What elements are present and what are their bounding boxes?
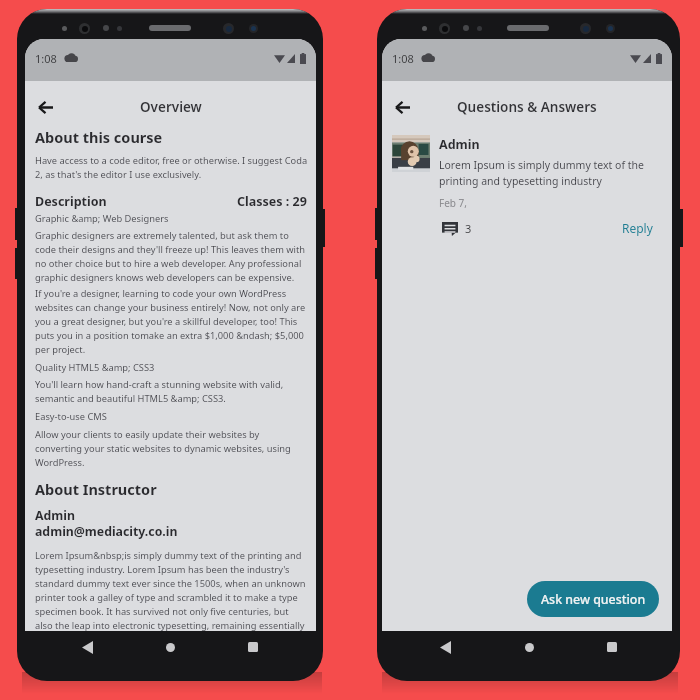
staticText: Description [35,193,107,210]
staticText: 1:08 [392,51,414,66]
staticText: Graphic designers are extremely talented… [35,229,306,284]
staticText: You'll learn how hand-craft a stunning w… [35,378,284,405]
staticText: Easy-to-use CMS [35,410,107,423]
staticText: Feb 7, [439,196,467,210]
button[interactable]: Back [74,634,100,660]
staticText: 1:08 [35,51,57,66]
staticText: Have access to a code editor, free or ot… [35,154,308,181]
staticText: Quality HTML5 &amp; CSS3 [35,361,155,374]
staticText: Admin [35,507,75,524]
staticText: admin@mediacity.co.in [35,523,178,540]
button[interactable]: Comments [440,219,474,238]
staticText: Questions & Answers [457,98,597,116]
staticText: About this course [35,127,163,147]
staticText: Overview [140,98,202,116]
staticText: Reply [622,220,653,236]
button[interactable]: Back [432,634,458,660]
staticText: Lorem Ipsum&nbsp;is simply dummy text of… [35,549,306,631]
staticText: 3 [465,221,472,236]
button[interactable]: Ask new question [527,581,659,617]
button[interactable]: Reply [618,216,657,240]
staticText: About Instructor [35,479,157,499]
button[interactable]: Home [157,634,183,660]
staticText: Admin [439,136,480,153]
staticText: Ask new question [541,591,646,608]
button[interactable]: Back [382,87,422,127]
button[interactable]: Recents [240,634,266,660]
button[interactable]: Home [516,634,542,660]
button[interactable]: Back [25,87,65,127]
staticText: Lorem Ipsum is simply dummy text of the … [439,158,644,188]
staticText: Classes : 29 [237,193,307,210]
staticText: Graphic &amp; Web Designers [35,212,169,225]
staticText: Allow your clients to easily update thei… [35,428,291,469]
button[interactable]: Recents [599,634,625,660]
staticText: If you're a designer, learning to code y… [35,287,306,356]
